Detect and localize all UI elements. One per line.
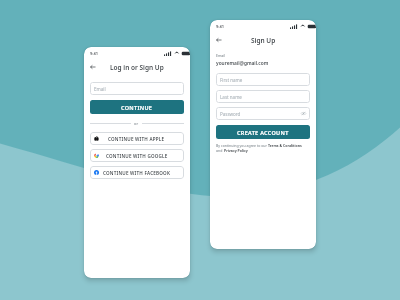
button[interactable]: Last name	[216, 90, 310, 103]
staticText: 9:41	[90, 51, 98, 56]
staticText: CONTINUE	[121, 104, 153, 111]
button[interactable]: Password	[216, 107, 310, 120]
staticText: Log in or Sign Up	[110, 63, 164, 72]
button[interactable]: CONTINUE WITH GOOGLE	[90, 149, 184, 162]
staticText: youremail@gmail.com	[216, 60, 269, 67]
button[interactable]: CONTINUE WITH FACEBOOK	[90, 166, 184, 179]
staticText: or	[134, 121, 139, 126]
staticText: CONTINUE WITH GOOGLE	[106, 153, 168, 159]
button[interactable]: CREATE ACCOUNT	[216, 125, 310, 139]
button[interactable]: Terms & Conditions	[268, 143, 302, 148]
staticText: Email	[94, 86, 106, 92]
button[interactable]: First name	[216, 73, 310, 86]
button[interactable]: Back	[214, 35, 224, 45]
staticText: By continuing you agree to our	[216, 143, 268, 148]
staticText: CREATE ACCOUNT	[237, 129, 289, 136]
staticText: Sign Up	[251, 36, 276, 45]
staticText: Password	[220, 111, 241, 117]
staticText: CONTINUE WITH FACEBOOK	[103, 170, 171, 176]
staticText: and	[216, 148, 224, 153]
button[interactable]: CONTINUE WITH APPLE	[90, 132, 184, 145]
button[interactable]: Privacy Policy	[224, 148, 248, 153]
button[interactable]: Email	[90, 82, 184, 95]
staticText: 9:41	[216, 24, 224, 29]
button[interactable]: Back	[88, 62, 98, 72]
staticText: Email	[216, 53, 226, 58]
staticText: First name	[220, 77, 243, 83]
button[interactable]: CONTINUE	[90, 100, 184, 114]
staticText: CONTINUE WITH APPLE	[108, 136, 165, 142]
staticText: Last name	[220, 94, 242, 100]
